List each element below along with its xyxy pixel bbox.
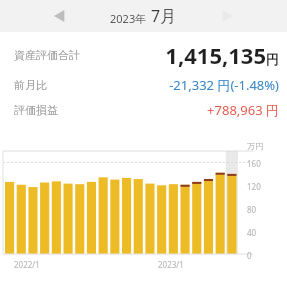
button[interactable]: Previous month: [48, 5, 70, 27]
staticText: 前月比: [14, 78, 47, 92]
staticText: 0: [247, 250, 252, 261]
staticText: 120: [247, 181, 261, 192]
staticText: 2022/1: [14, 259, 40, 270]
staticText: +788,963 円: [207, 101, 279, 119]
button[interactable]: 資産評価合計: [14, 40, 279, 70]
staticText: 2023年: [110, 11, 147, 26]
button[interactable]: 前月比: [14, 76, 279, 94]
staticText: -21,332 円(-1.48%): [169, 76, 279, 94]
staticText: 80: [247, 204, 257, 215]
staticText: 1,415,135円: [165, 40, 279, 70]
staticText: 万円: [247, 141, 263, 151]
staticText: 40: [247, 227, 257, 238]
staticText: 160: [247, 158, 261, 169]
button[interactable]: 評価損益: [14, 101, 279, 119]
staticText: 資産評価合計: [14, 48, 80, 62]
staticText: 評価損益: [14, 103, 58, 117]
staticText: 7月: [151, 5, 177, 27]
staticText: 2023/1: [158, 259, 184, 270]
